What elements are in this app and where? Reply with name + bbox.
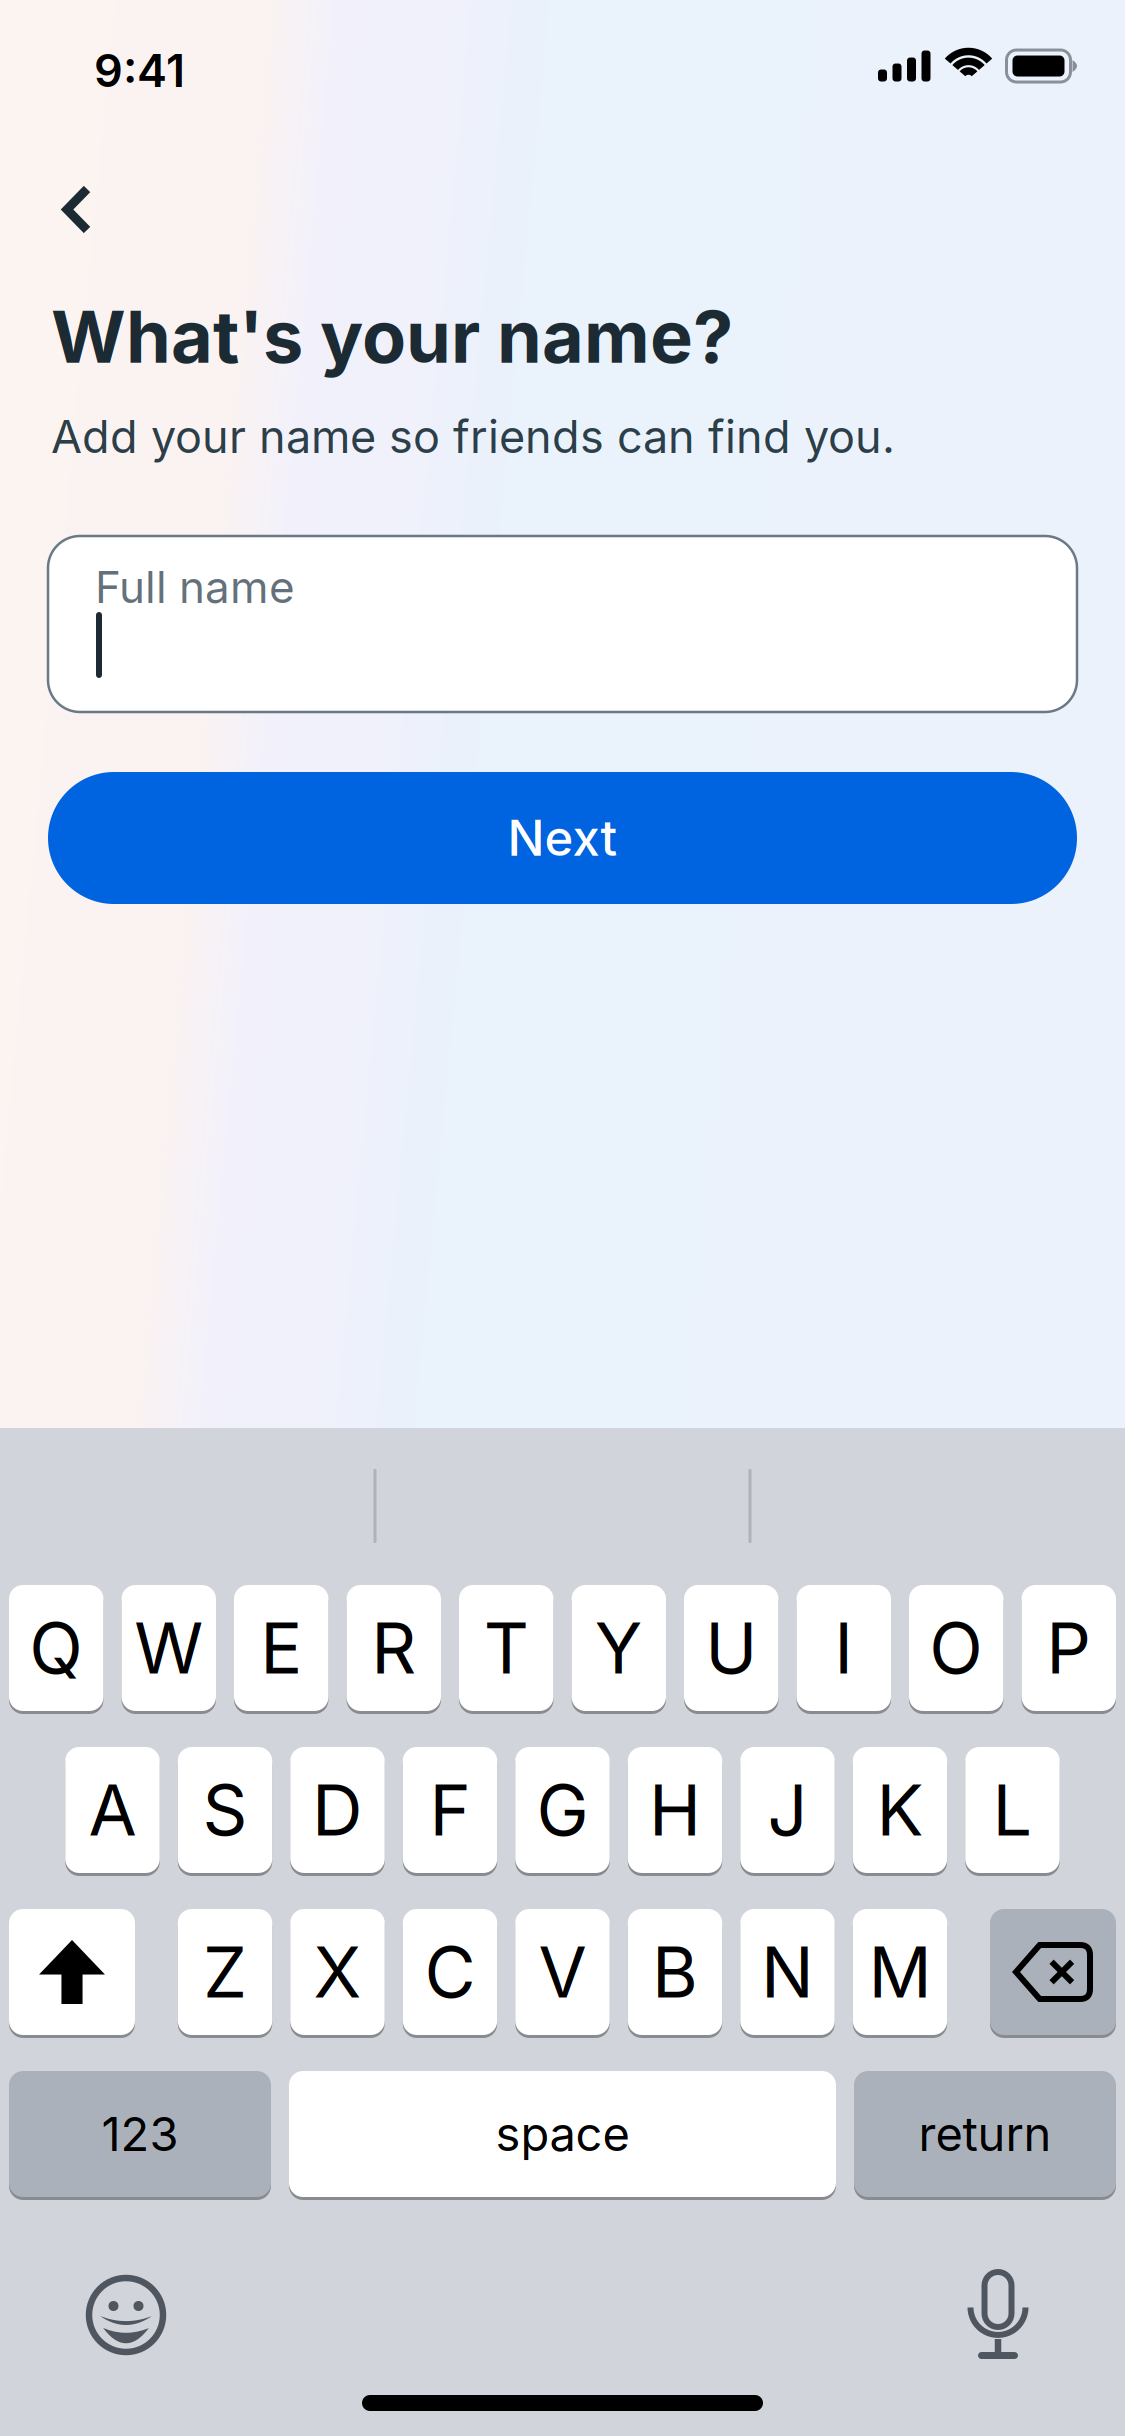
- button[interactable]: A: [65, 1747, 160, 1876]
- staticText: H: [649, 1769, 701, 1851]
- staticText: L: [992, 1769, 1032, 1851]
- button[interactable]: M: [853, 1909, 947, 2038]
- button[interactable]: Dictation: [946, 2248, 1050, 2384]
- button[interactable]: C: [403, 1909, 497, 2038]
- button[interactable]: H: [628, 1747, 722, 1876]
- button[interactable]: G: [515, 1747, 610, 1876]
- button[interactable]: T: [459, 1585, 553, 1714]
- staticText: E: [260, 1607, 302, 1689]
- staticText: Z: [203, 1931, 247, 2013]
- staticText: U: [705, 1607, 757, 1689]
- button[interactable]: B: [628, 1909, 722, 2038]
- staticText: W: [134, 1607, 203, 1689]
- staticText: space: [495, 2106, 629, 2162]
- staticText: D: [312, 1769, 363, 1851]
- staticText: J: [767, 1769, 807, 1851]
- staticText: 9:41: [94, 44, 185, 97]
- staticText: N: [761, 1931, 814, 2013]
- button[interactable]: F: [403, 1747, 497, 1876]
- staticText: M: [868, 1931, 931, 2013]
- staticText: What's your name?: [51, 294, 733, 379]
- staticText: T: [484, 1607, 529, 1689]
- button[interactable]: Shift: [9, 1909, 135, 2038]
- button[interactable]: K: [853, 1747, 947, 1876]
- button[interactable]: V: [515, 1909, 610, 2038]
- staticText: X: [313, 1931, 361, 2013]
- button[interactable]: S: [178, 1747, 272, 1876]
- button[interactable]: X: [290, 1909, 385, 2038]
- staticText: B: [652, 1931, 698, 2013]
- button[interactable]: Z: [178, 1909, 272, 2038]
- button[interactable]: Delete: [990, 1909, 1116, 2038]
- button[interactable]: space: [289, 2071, 836, 2200]
- button[interactable]: Q: [9, 1585, 103, 1714]
- staticText: Next: [507, 809, 617, 867]
- staticText: O: [929, 1607, 983, 1689]
- button[interactable]: D: [290, 1747, 385, 1876]
- staticText: K: [876, 1769, 923, 1851]
- button[interactable]: Next: [48, 772, 1077, 904]
- button[interactable]: W: [121, 1585, 216, 1714]
- button[interactable]: 123: [9, 2071, 271, 2200]
- staticText: S: [202, 1769, 247, 1851]
- button[interactable]: Back: [33, 169, 121, 250]
- button[interactable]: P: [1021, 1585, 1116, 1714]
- staticText: Q: [29, 1607, 83, 1689]
- staticText: 123: [101, 2106, 178, 2162]
- staticText: G: [536, 1769, 588, 1851]
- button[interactable]: E: [234, 1585, 328, 1714]
- button[interactable]: I: [796, 1585, 891, 1714]
- staticText: F: [429, 1769, 470, 1851]
- staticText: return: [918, 2106, 1051, 2162]
- button[interactable]: J: [740, 1747, 835, 1876]
- staticText: C: [424, 1931, 475, 2013]
- button[interactable]: O: [909, 1585, 1003, 1714]
- staticText: I: [834, 1607, 853, 1689]
- staticText: Add your name so friends can find you.: [51, 410, 895, 463]
- button[interactable]: Y: [571, 1585, 666, 1714]
- staticText: P: [1046, 1607, 1091, 1689]
- button[interactable]: Full name: [48, 536, 1077, 712]
- staticText: V: [538, 1931, 586, 2013]
- button[interactable]: Emoji: [61, 2250, 191, 2380]
- button[interactable]: U: [684, 1585, 778, 1714]
- staticText: R: [371, 1607, 416, 1689]
- button[interactable]: return: [854, 2071, 1116, 2200]
- staticText: Y: [595, 1607, 643, 1689]
- button[interactable]: L: [965, 1747, 1060, 1876]
- staticText: A: [88, 1769, 136, 1851]
- button[interactable]: R: [346, 1585, 441, 1714]
- staticText: Full name: [95, 561, 295, 613]
- button[interactable]: N: [740, 1909, 835, 2038]
